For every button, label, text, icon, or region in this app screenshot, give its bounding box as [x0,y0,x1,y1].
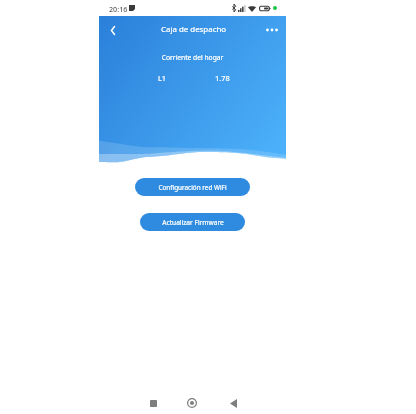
staticText: L1 [158,73,167,83]
button[interactable]: Back [105,23,119,37]
staticText: Configuración red WiFi [158,183,227,192]
staticText: 1.78 [215,73,230,83]
button[interactable]: Back [224,394,242,412]
button[interactable]: Actualizar Firmware [140,213,245,231]
staticText: Corriente del hogar [99,53,286,62]
button[interactable]: More options [265,23,279,37]
button[interactable]: Configuración red WiFi [135,178,250,196]
staticText: Actualizar Firmware [162,218,224,227]
button[interactable]: Home [183,394,201,412]
button[interactable]: Recents [144,394,162,412]
staticText: Caja de despacho [161,24,227,35]
staticText: 20:16 [109,4,128,14]
